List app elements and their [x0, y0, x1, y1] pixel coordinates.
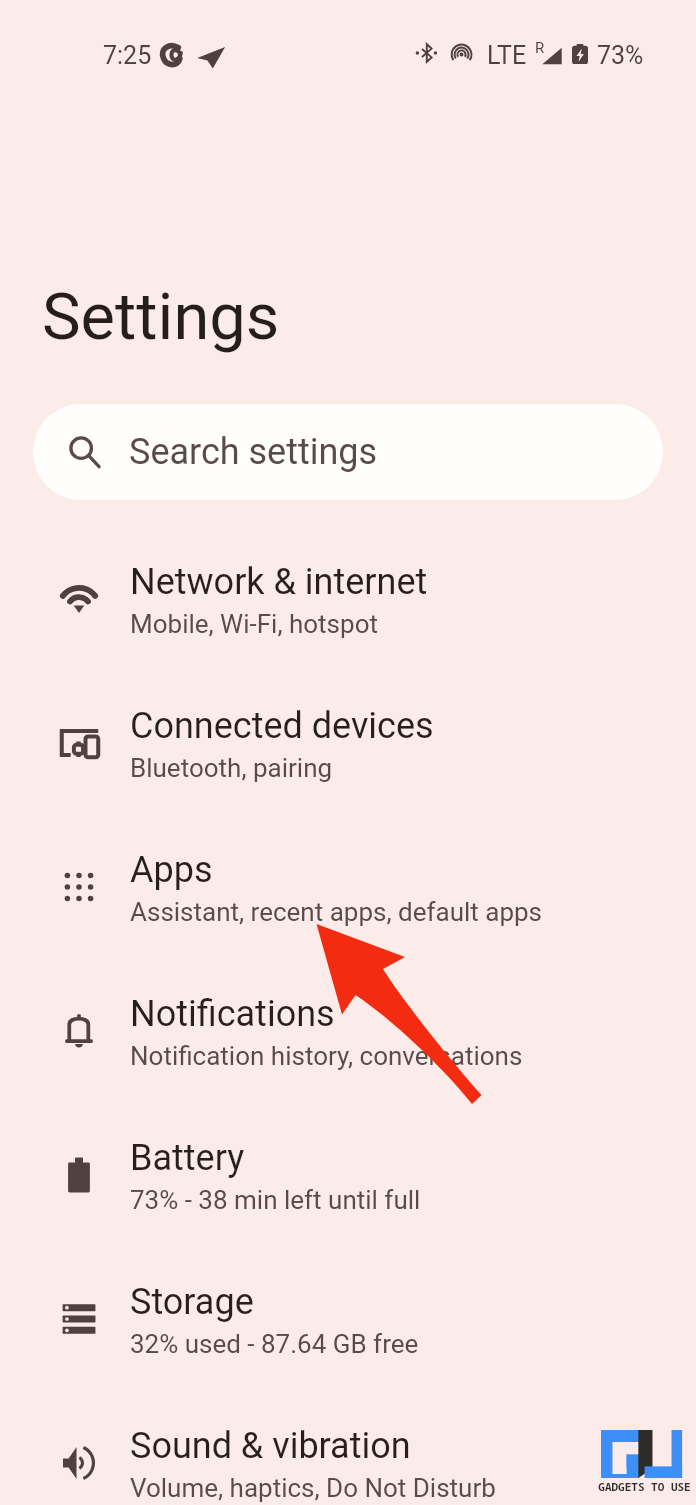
button[interactable]: Notifications	[0, 976, 696, 1120]
staticText: Connected devices	[130, 705, 434, 747]
staticText: Search settings	[129, 431, 378, 473]
staticText: LTE	[487, 41, 527, 70]
staticText: Sound & vibration	[130, 1425, 411, 1467]
staticText: 7:25	[103, 41, 152, 70]
button[interactable]: Network & internet	[0, 544, 696, 688]
staticText: Apps	[130, 849, 213, 891]
staticText: R	[535, 39, 545, 57]
staticText: Assistant, recent apps, default apps	[130, 897, 543, 927]
staticText: Battery	[130, 1137, 245, 1179]
button[interactable]: Connected devices	[0, 688, 696, 832]
staticText: 73%	[597, 41, 644, 70]
button[interactable]: Sound & vibration	[0, 1408, 696, 1505]
button[interactable]: Battery	[0, 1120, 696, 1264]
staticText: Bluetooth, pairing	[130, 753, 333, 783]
other: Search	[69, 436, 101, 468]
staticText: Settings	[42, 279, 280, 355]
staticText: Volume, haptics, Do Not Disturb	[130, 1473, 496, 1503]
button[interactable]: Storage	[0, 1264, 696, 1408]
staticText: GADGETS TO USE	[598, 1479, 691, 1494]
staticText: Notifications	[130, 993, 335, 1035]
staticText: Mobile, Wi-Fi, hotspot	[130, 609, 378, 639]
button[interactable]: Search	[33, 404, 663, 500]
staticText: Network & internet	[130, 561, 428, 603]
staticText: 32% used - 87.64 GB free	[130, 1329, 419, 1359]
staticText: Notification history, conversations	[130, 1041, 523, 1071]
staticText: Storage	[130, 1281, 254, 1323]
button[interactable]: Apps	[0, 832, 696, 976]
staticText: 73% - 38 min left until full	[130, 1185, 421, 1215]
